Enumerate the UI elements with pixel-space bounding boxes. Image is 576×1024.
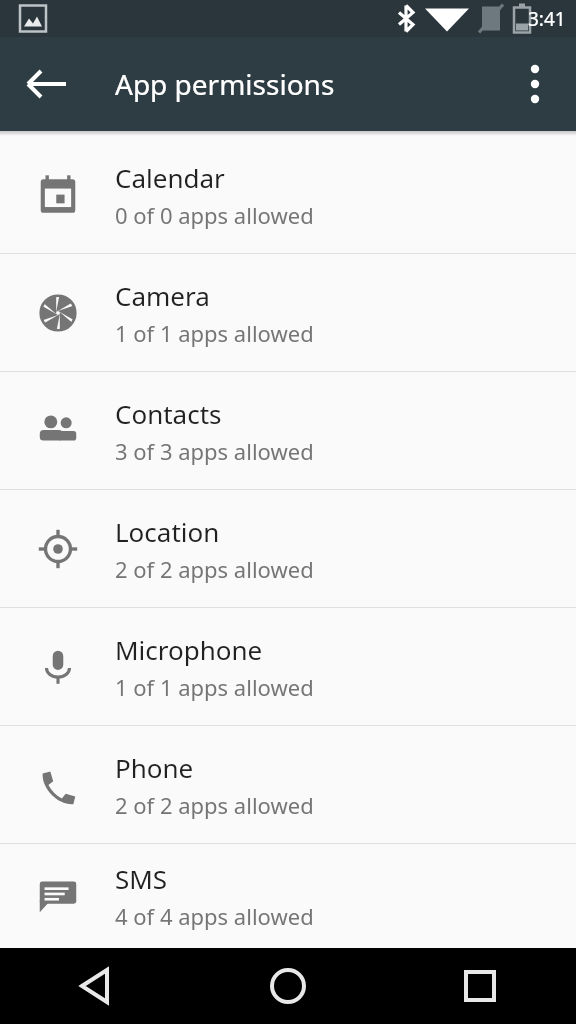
button[interactable]: Contacts [0, 372, 576, 489]
staticText: 1 of 1 apps allowed [115, 672, 314, 702]
staticText: 3 of 3 apps allowed [115, 436, 314, 466]
button[interactable]: Back [0, 37, 94, 131]
button[interactable]: Calendar [0, 136, 576, 253]
staticText: 3:41 [528, 6, 566, 32]
button[interactable]: SMS [0, 844, 576, 948]
staticText: 2 of 2 apps allowed [115, 790, 314, 820]
staticText: Contacts [115, 396, 222, 431]
button[interactable]: Microphone [0, 608, 576, 725]
staticText: 2 of 2 apps allowed [115, 554, 314, 584]
button[interactable]: Home [192, 948, 384, 1024]
button[interactable]: Camera [0, 254, 576, 371]
staticText: Phone [115, 750, 194, 785]
button[interactable]: Recent apps [384, 948, 576, 1024]
staticText: Microphone [115, 632, 263, 667]
staticText: Camera [115, 278, 210, 313]
staticText: 1 of 1 apps allowed [115, 318, 314, 348]
staticText: 4 of 4 apps allowed [115, 901, 314, 931]
button[interactable]: More options [482, 37, 576, 131]
button[interactable]: Phone [0, 726, 576, 843]
staticText: Calendar [115, 160, 225, 195]
staticText: App permissions [115, 65, 335, 103]
staticText: Location [115, 514, 220, 549]
button[interactable]: Location [0, 490, 576, 607]
staticText: SMS [115, 861, 168, 896]
staticText: 0 of 0 apps allowed [115, 200, 314, 230]
button[interactable]: Back [0, 948, 192, 1024]
